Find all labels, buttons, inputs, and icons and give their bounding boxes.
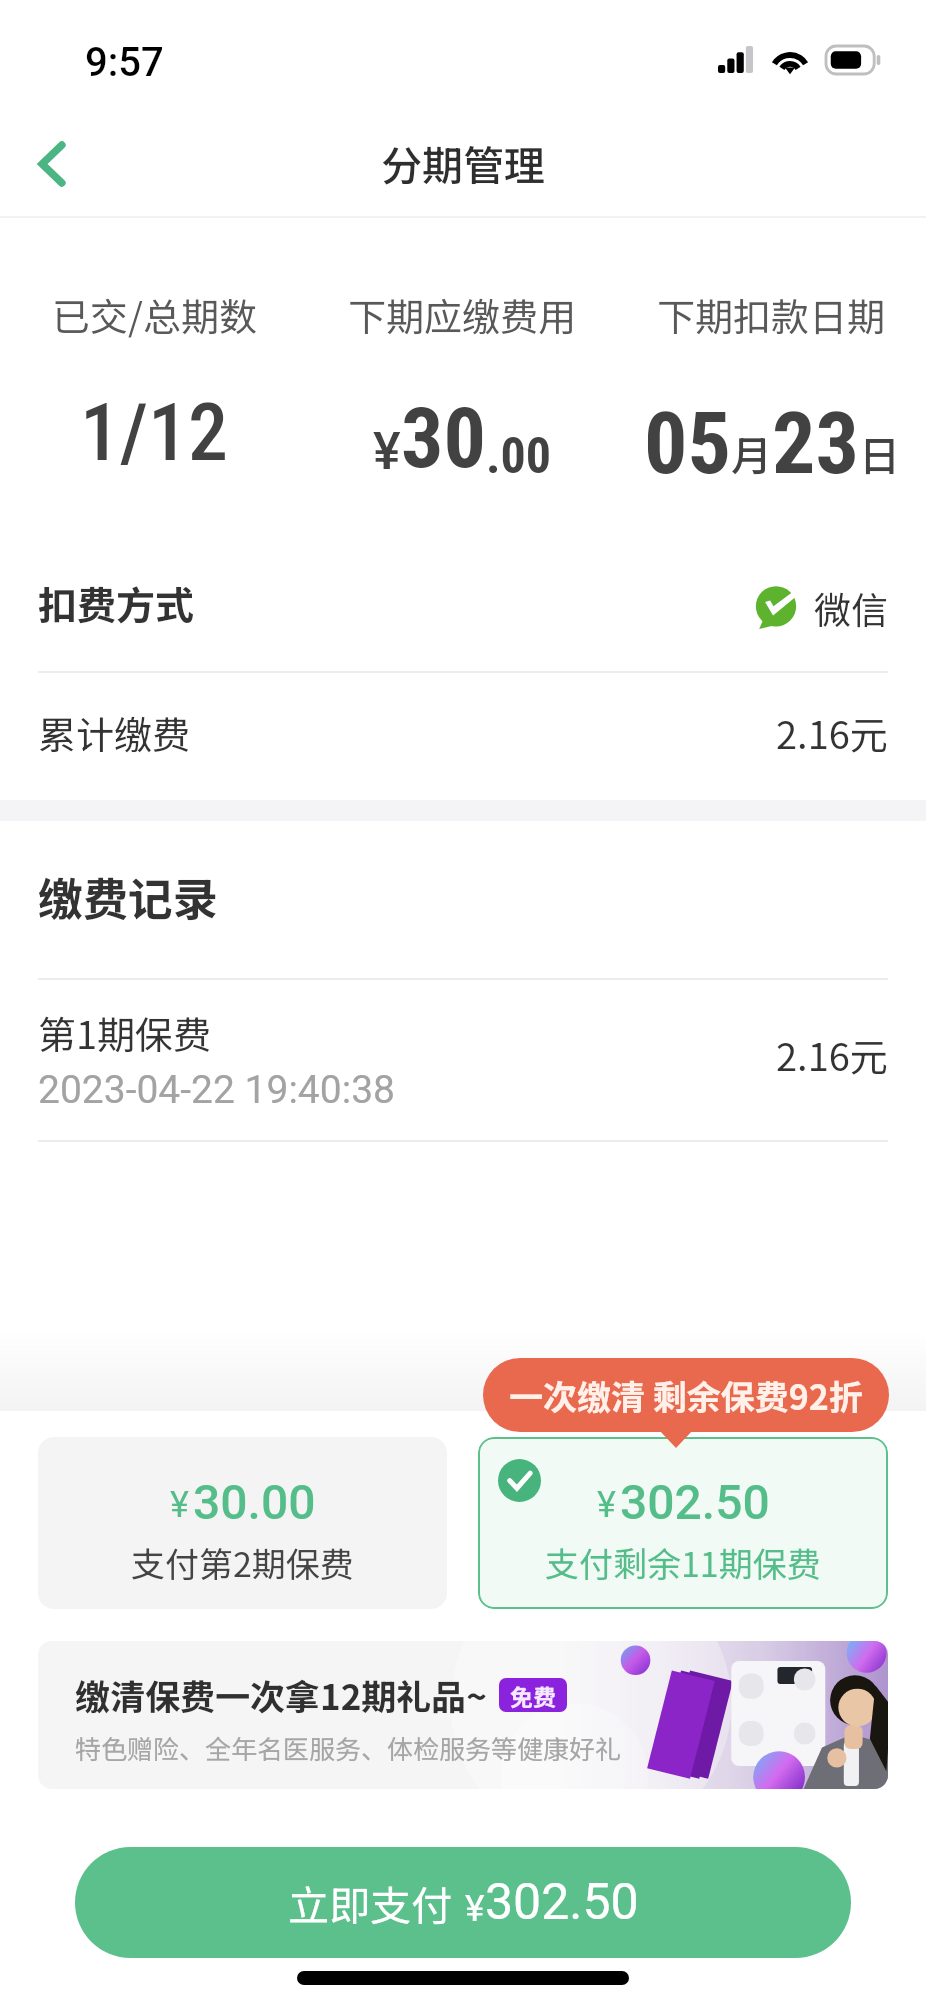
staticText: 累计缴费 (38, 705, 191, 760)
button[interactable]: 扣费方式 (38, 545, 888, 671)
staticText: ¥ (373, 421, 401, 482)
staticText: 扣费方式 (38, 575, 195, 631)
staticText: 分期管理 (381, 133, 545, 192)
staticText: 日 (859, 423, 900, 482)
staticText: 一次缴清 剩余保费92折 (509, 1371, 863, 1420)
button[interactable]: 累计缴费 (38, 673, 888, 791)
staticText: 1/12 (80, 386, 228, 480)
button[interactable]: 缴清保费一次拿12期礼品~ (38, 1641, 888, 1789)
staticText: 下期应缴费用 (348, 287, 577, 342)
staticText: ¥ (597, 1484, 616, 1526)
staticText: 30.00 (193, 1474, 316, 1530)
staticText: 特色赠险、全年名医服务、体检服务等健康好礼 (75, 1729, 622, 1767)
button[interactable]: 第1期保费 (38, 980, 888, 1140)
staticText: 9:57 (85, 39, 164, 86)
staticText: 2.16元 (776, 1027, 888, 1082)
staticText: 30 (401, 389, 486, 487)
button[interactable]: ¥ (478, 1437, 888, 1609)
staticText: 2.16元 (776, 705, 888, 760)
button[interactable]: 立即支付 (75, 1847, 851, 1958)
staticText: 05 (644, 393, 731, 494)
staticText: ¥ (465, 1887, 485, 1930)
staticText: 月 (731, 423, 772, 482)
staticText: 支付第2期保费 (131, 1538, 354, 1587)
staticText: 立即支付 (288, 1873, 452, 1932)
staticText: 23 (772, 393, 859, 494)
staticText: 2023-04-22 19:40:38 (38, 1067, 395, 1113)
staticText: 微信 (814, 581, 888, 635)
button[interactable]: ¥ (38, 1437, 447, 1609)
staticText: 302.50 (485, 1873, 639, 1932)
staticText: 缴费记录 (38, 864, 219, 929)
button[interactable]: 一次缴清 剩余保费92折 (509, 1358, 863, 1432)
staticText: .00 (486, 427, 552, 486)
staticText: 下期扣款日期 (657, 287, 886, 342)
staticText: 已交/总期数 (52, 287, 257, 342)
staticText: 缴清保费一次拿12期礼品~ (75, 1669, 487, 1720)
staticText: 302.50 (620, 1474, 770, 1530)
staticText: 免费 (510, 1679, 556, 1712)
staticText: ¥ (170, 1484, 189, 1526)
staticText: 第1期保费 (38, 1005, 212, 1060)
button[interactable]: Back (0, 112, 104, 216)
staticText: 支付剩余11期保费 (545, 1538, 821, 1587)
